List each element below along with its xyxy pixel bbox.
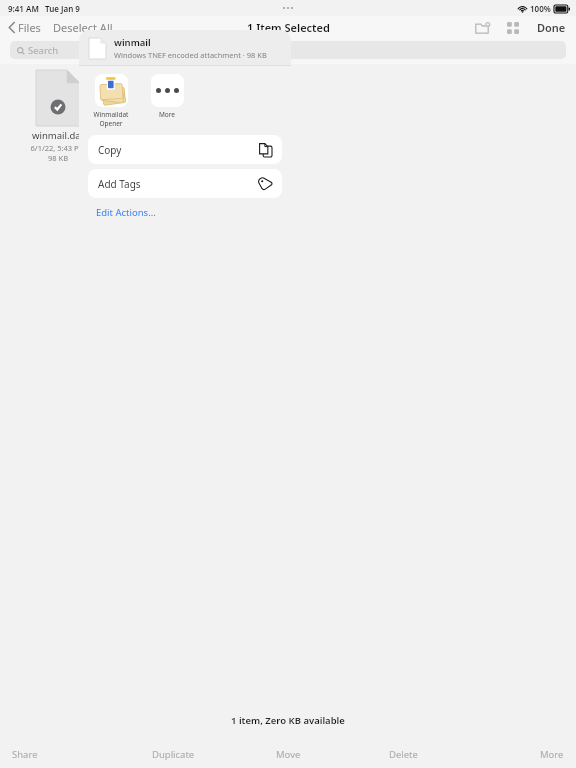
button[interactable]: Duplicate xyxy=(116,740,231,768)
staticText: Move xyxy=(276,748,301,761)
button[interactable]: Deselect All xyxy=(50,18,116,37)
staticText: Copy xyxy=(98,143,122,157)
button[interactable]: Edit Actions… xyxy=(96,204,156,221)
button[interactable]: Copy xyxy=(88,135,282,164)
staticText: Winmaildat xyxy=(89,110,133,119)
staticText: Windows TNEF encoded attachment · 98 KB xyxy=(114,50,267,60)
button[interactable]: New Folder xyxy=(473,20,491,36)
staticText: Edit Actions… xyxy=(96,206,156,219)
staticText: Files xyxy=(18,20,41,35)
staticText: Tue Jan 9 xyxy=(45,3,80,14)
staticText: Deselect All xyxy=(53,20,113,35)
button[interactable]: Files xyxy=(6,18,44,37)
staticText: More xyxy=(145,110,189,119)
staticText: Done xyxy=(537,20,566,35)
button[interactable]: Search xyxy=(10,41,566,59)
button[interactable]: Add Tags xyxy=(88,169,282,198)
staticText: Add Tags xyxy=(98,177,141,191)
staticText: 9:41 AM xyxy=(8,3,39,14)
button[interactable]: Winmaildat xyxy=(89,74,133,128)
staticText: winmail.dat xyxy=(22,129,94,142)
button[interactable]: Done xyxy=(535,18,568,37)
staticText: 98 KB xyxy=(22,153,94,163)
button[interactable]: Delete xyxy=(346,740,461,768)
button[interactable]: winmail.dat xyxy=(22,70,94,163)
staticText: Share xyxy=(12,748,38,761)
staticText: 1 Item Selected xyxy=(247,20,330,35)
button[interactable]: Grid View xyxy=(505,20,521,36)
button[interactable]: winmail xyxy=(79,30,291,66)
staticText: 6/1/22, 5:43 PM xyxy=(22,143,94,153)
staticText: More xyxy=(540,748,564,761)
staticText: winmail xyxy=(114,36,151,49)
staticText: 100% xyxy=(530,3,551,14)
staticText: Delete xyxy=(389,748,418,761)
staticText: Opener xyxy=(89,119,133,128)
staticText: Search xyxy=(28,44,59,57)
button[interactable]: More xyxy=(461,740,576,768)
button[interactable]: Move xyxy=(231,740,346,768)
button[interactable]: Share xyxy=(0,740,116,768)
button[interactable]: More xyxy=(145,74,189,119)
staticText: 1 item, Zero KB available xyxy=(231,714,345,727)
staticText: Duplicate xyxy=(152,748,195,761)
